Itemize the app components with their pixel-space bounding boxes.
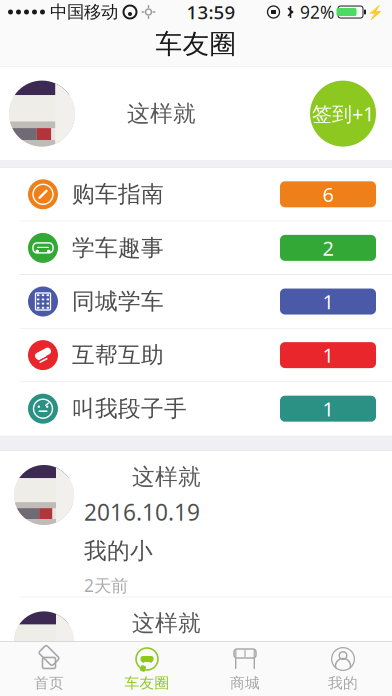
staticText: 6 <box>322 181 333 208</box>
staticText: 购车指南 <box>72 180 164 208</box>
staticText: 车友圈 <box>124 674 169 692</box>
button[interactable]: 首页 <box>0 644 98 693</box>
staticText: 这样就 <box>127 100 196 127</box>
button[interactable]: 我的 <box>294 644 392 693</box>
button[interactable]: 同城学车 <box>0 275 392 329</box>
button[interactable]: 学车趣事 <box>0 221 392 275</box>
staticText: 1 <box>322 395 333 422</box>
staticText: 1 <box>322 288 333 315</box>
staticText: 92% <box>300 0 334 23</box>
staticText: 我的 <box>328 674 358 692</box>
button[interactable]: 叫我段子手 <box>0 382 392 436</box>
staticText: ⚡ <box>367 4 384 20</box>
button[interactable]: 商城 <box>196 644 294 693</box>
staticText: 2016.10.19 <box>84 497 200 527</box>
staticText: 商城 <box>230 674 260 692</box>
button[interactable]: 这样就 <box>0 597 392 696</box>
staticText: 13:59 <box>186 0 235 24</box>
staticText: 这样就 <box>132 609 201 637</box>
staticText: 学车趣事 <box>72 234 164 262</box>
staticText: 首页 <box>34 674 64 692</box>
button[interactable]: 车友圈 <box>98 644 196 693</box>
staticText: 同城学车 <box>72 288 164 315</box>
staticText: 中国移动 <box>50 1 118 23</box>
staticText: 2 <box>322 235 333 261</box>
staticText: 签到+1 <box>312 100 374 127</box>
button[interactable]: 互帮互助 <box>0 329 392 382</box>
staticText: 2天前 <box>84 574 128 597</box>
button[interactable]: 这样就 <box>0 451 392 597</box>
staticText: 2016.10.19 <box>84 643 200 673</box>
button[interactable]: 这样就 <box>0 67 392 161</box>
staticText: 叫我段子手 <box>72 395 187 423</box>
button[interactable]: 购车指南 <box>0 168 392 221</box>
staticText: 车友圈 <box>155 28 236 60</box>
staticText: 我的小 <box>84 683 153 696</box>
staticText: 我的小 <box>84 537 153 565</box>
staticText: 1 <box>322 342 333 368</box>
staticText: 这样就 <box>132 463 201 491</box>
staticText: 互帮互助 <box>72 341 164 369</box>
